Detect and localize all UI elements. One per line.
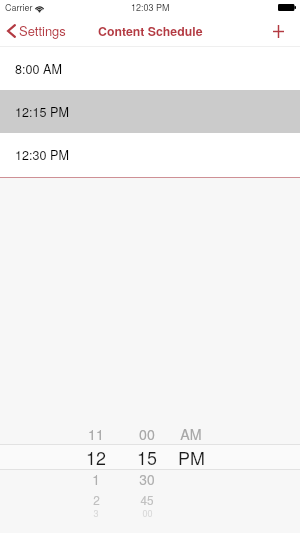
button[interactable]: 12:15 PM	[0, 90, 300, 133]
staticText: 30	[139, 469, 155, 489]
staticText: 12:03 PM	[131, 1, 170, 14]
staticText: 1	[92, 469, 100, 489]
staticText: 3	[93, 507, 99, 520]
staticText: Content Schedule	[98, 22, 203, 40]
staticText: 00	[139, 424, 155, 444]
staticText: 11	[88, 424, 104, 444]
staticText: 12	[86, 444, 106, 470]
button[interactable]: 12:30 PM	[0, 133, 300, 176]
staticText: 00	[142, 507, 153, 520]
staticText: PM	[178, 444, 205, 470]
staticText: 2	[93, 491, 100, 508]
button[interactable]: 8:00 AM	[0, 47, 300, 90]
staticText: 45	[140, 491, 154, 508]
staticText: AM	[180, 424, 202, 444]
staticText: Settings	[19, 21, 66, 40]
staticText: 12:15 PM	[15, 103, 69, 121]
staticText: 8:00 AM	[15, 60, 62, 78]
staticText: 15	[137, 444, 157, 470]
staticText: 12:30 PM	[15, 146, 69, 164]
button[interactable]: Settings	[0, 17, 74, 45]
button[interactable]: Add	[263, 20, 300, 43]
staticText: Carrier	[5, 1, 33, 14]
